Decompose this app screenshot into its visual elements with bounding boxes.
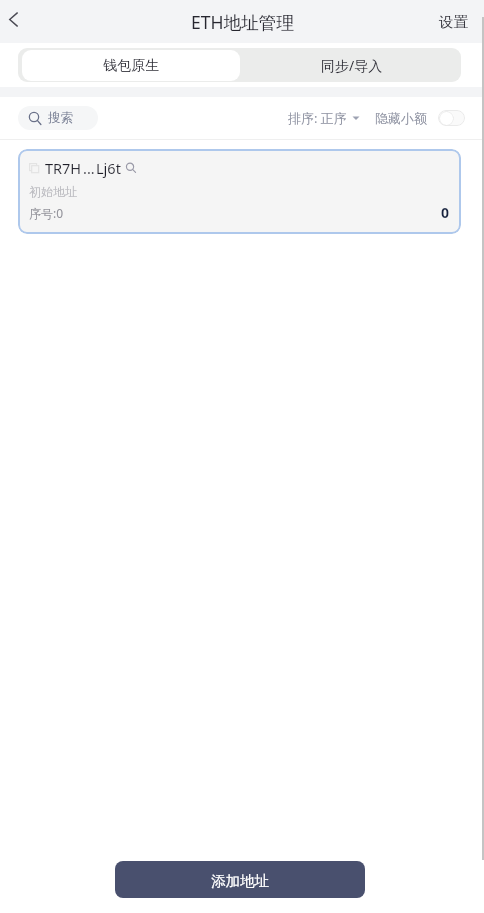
button[interactable]: 排序: 正序 — [288, 103, 360, 133]
button[interactable]: TR7H — [18, 149, 461, 234]
button[interactable]: Hide small amounts toggle — [438, 110, 465, 126]
staticText: ETH地址管理 — [191, 10, 294, 34]
button[interactable]: 设置 — [423, 2, 484, 42]
staticText: 搜索 — [48, 110, 73, 126]
staticText: 序号:0 — [29, 205, 64, 221]
staticText: 0 — [441, 203, 450, 222]
other: Search address — [125, 162, 137, 174]
staticText: 设置 — [439, 13, 469, 31]
button[interactable]: 同步/导入 — [242, 48, 461, 82]
staticText: TR7H — [45, 158, 82, 178]
staticText: 同步/导入 — [321, 56, 383, 75]
button[interactable]: 添加地址 — [115, 861, 365, 898]
staticText: 隐藏小额 — [375, 110, 427, 126]
staticText: Lj6t — [96, 158, 121, 178]
staticText: 初始地址 — [29, 184, 77, 199]
button[interactable]: 搜索 — [18, 106, 98, 130]
staticText: 添加地址 — [211, 872, 270, 890]
staticText: 钱包原生 — [103, 57, 159, 75]
staticText: 排序: 正序 — [288, 109, 347, 127]
button[interactable]: Back — [0, 0, 34, 43]
button[interactable]: 钱包原生 — [22, 50, 240, 81]
staticText: ... — [83, 158, 95, 178]
